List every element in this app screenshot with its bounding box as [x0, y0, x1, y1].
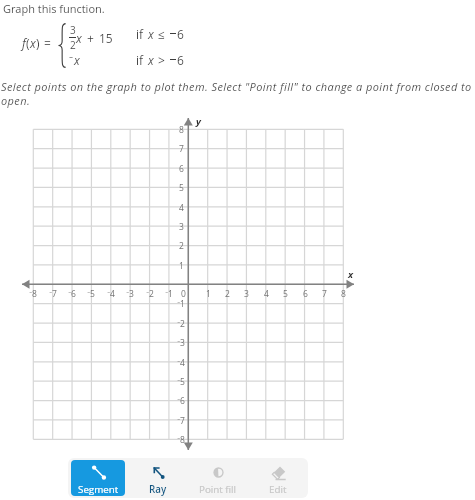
- staticText: f: [22, 35, 26, 51]
- staticText: 4: [179, 202, 184, 214]
- button[interactable]: Segment: [71, 460, 125, 496]
- staticText: ⁻6: [177, 395, 185, 407]
- staticText: 8: [341, 288, 346, 300]
- staticText: ⁻3: [177, 337, 185, 349]
- staticText: 2: [225, 288, 230, 300]
- staticText: x: [148, 52, 154, 68]
- staticText: 3: [244, 288, 249, 300]
- staticText: ⁻8: [177, 434, 185, 446]
- staticText: Select points on the graph to plot them.…: [1, 79, 475, 108]
- staticText: x: [76, 30, 82, 46]
- button[interactable]: Ray: [131, 460, 185, 496]
- staticText: 0: [181, 288, 186, 300]
- staticText: 6: [177, 52, 184, 68]
- staticText: ≤: [158, 26, 165, 42]
- staticText: x: [30, 35, 36, 51]
- staticText: (: [26, 35, 30, 51]
- staticText: ⁻5: [87, 288, 95, 300]
- staticText: Ray: [149, 483, 167, 496]
- staticText: ⁻4: [107, 288, 115, 300]
- staticText: ⁻1: [177, 298, 185, 310]
- staticText: 2: [179, 240, 184, 252]
- staticText: 5: [283, 288, 288, 300]
- staticText: Edit: [269, 483, 287, 496]
- button[interactable]: Edit: [251, 460, 305, 496]
- staticText: Segment: [78, 483, 119, 496]
- staticText: x: [148, 26, 154, 42]
- staticText: +: [87, 30, 94, 46]
- staticText: ⁻7: [49, 288, 57, 300]
- staticText: 5: [179, 182, 184, 194]
- staticText: ⁻2: [177, 318, 185, 330]
- staticText: ⁻7: [177, 415, 185, 427]
- staticText: 6: [303, 288, 308, 300]
- staticText: ⁻8: [29, 288, 37, 300]
- staticText: ): [36, 35, 40, 51]
- staticText: 15: [99, 30, 113, 46]
- staticText: ⁻4: [177, 357, 185, 369]
- staticText: x: [348, 268, 354, 281]
- staticText: ⁻2: [146, 288, 154, 300]
- staticText: y: [196, 115, 201, 128]
- staticText: 6: [177, 26, 184, 42]
- staticText: Point fill: [199, 483, 237, 496]
- staticText: 3: [70, 23, 76, 37]
- staticText: ⁻5: [177, 376, 185, 388]
- staticText: 1: [179, 260, 184, 272]
- staticText: ⁻6: [68, 288, 76, 300]
- staticText: 7: [322, 288, 327, 300]
- staticText: 1: [206, 288, 211, 300]
- staticText: ⁻1: [165, 288, 173, 300]
- staticText: >: [158, 52, 165, 68]
- staticText: 6: [179, 163, 184, 175]
- staticText: x: [74, 52, 80, 68]
- staticText: if: [136, 26, 144, 42]
- staticText: 2: [70, 38, 76, 52]
- staticText: Graph this function.: [3, 1, 105, 16]
- staticText: if: [136, 52, 144, 68]
- button[interactable]: Point fill: [191, 460, 245, 496]
- staticText: ⁻: [69, 52, 74, 68]
- staticText: 3: [179, 221, 184, 233]
- staticText: 7: [179, 143, 184, 155]
- staticText: ⁻3: [126, 288, 134, 300]
- staticText: =: [44, 35, 51, 51]
- staticText: 4: [264, 288, 269, 300]
- staticText: 8: [179, 124, 184, 136]
